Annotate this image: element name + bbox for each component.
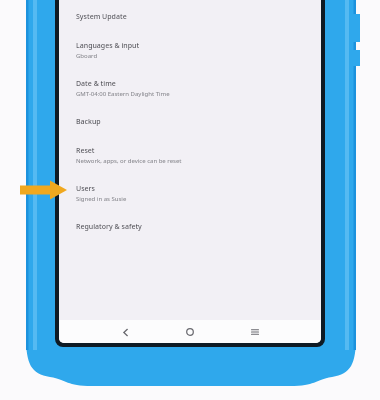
button[interactable]: Regulatory & safety (59, 203, 321, 232)
staticText: Reset (76, 146, 95, 156)
staticText: Backup (76, 117, 101, 127)
button[interactable]: Recent apps (246, 323, 264, 341)
button[interactable]: Languages & input (59, 22, 321, 60)
staticText: Regulatory & safety (76, 222, 142, 232)
staticText: Users (76, 184, 95, 194)
staticText: System Update (76, 12, 127, 22)
button[interactable]: System Update (59, 0, 321, 22)
button[interactable]: Backup (59, 98, 321, 127)
staticText: GMT-04:00 Eastern Daylight Time (76, 90, 170, 98)
button[interactable]: Users (59, 165, 321, 203)
staticText: Signed in as Susie (76, 195, 127, 203)
button[interactable]: Back (116, 323, 134, 341)
staticText: Date & time (76, 79, 116, 89)
staticText: Gboard (76, 52, 98, 60)
button[interactable]: Date & time (59, 60, 321, 98)
button[interactable]: Home (181, 323, 199, 341)
staticText: Network, apps, or device can be reset (76, 157, 182, 165)
staticText: Languages & input (76, 41, 140, 51)
button[interactable]: Reset (59, 127, 321, 165)
